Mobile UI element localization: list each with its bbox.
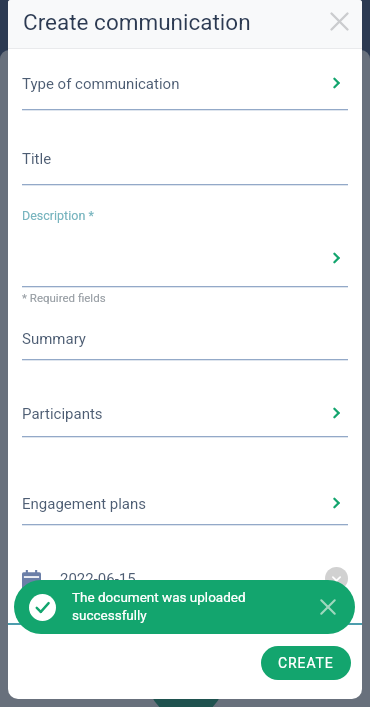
other: Open Participants	[326, 403, 346, 423]
button[interactable]	[22, 322, 348, 361]
staticText: Type of communication	[22, 75, 180, 93]
button[interactable]	[22, 67, 348, 111]
staticText: Summary	[22, 330, 86, 348]
button[interactable]: CREATE	[261, 646, 351, 680]
staticText: 2022-06-15	[60, 570, 136, 588]
staticText: Description *	[22, 208, 94, 223]
other: Open Engagement plans	[326, 493, 346, 513]
staticText: Create communication	[23, 9, 251, 35]
button[interactable]	[22, 397, 348, 438]
staticText: * Required fields	[22, 291, 106, 304]
button[interactable]: Dismiss	[313, 592, 343, 622]
staticText: Title	[22, 150, 52, 168]
button[interactable]: Open date picker	[325, 567, 348, 590]
other: Open Type of communication	[326, 73, 346, 93]
staticText: The document was uploaded	[72, 589, 246, 605]
button[interactable]: Close	[318, 0, 360, 42]
staticText: successfully	[72, 607, 147, 623]
staticText: Engagement plans	[22, 495, 147, 513]
staticText: Participants	[22, 405, 103, 423]
button[interactable]	[22, 142, 348, 186]
staticText: CREATE	[278, 655, 334, 671]
button[interactable]	[22, 204, 348, 290]
button[interactable]	[22, 487, 348, 526]
button[interactable]	[22, 562, 348, 594]
